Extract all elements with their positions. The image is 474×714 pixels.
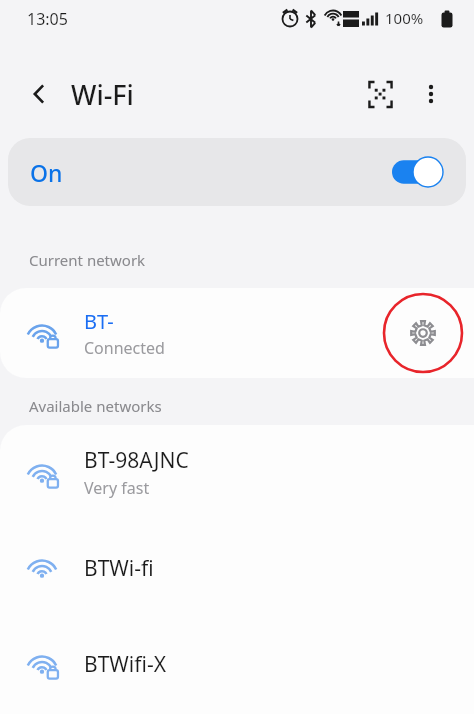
staticText: BTWi-fi <box>84 554 154 583</box>
staticText: BTWifi-X <box>84 650 166 679</box>
staticText: On <box>30 157 63 188</box>
staticText: 100% <box>385 8 424 28</box>
staticText: Current network <box>29 250 146 270</box>
button[interactable]: Back <box>18 72 62 116</box>
staticText: Available networks <box>29 396 162 416</box>
staticText: Connected <box>84 337 165 359</box>
staticText: Very fast <box>84 477 150 499</box>
staticText: BT- <box>84 308 114 335</box>
button[interactable]: On <box>8 138 466 206</box>
staticText: 13:05 <box>27 8 68 30</box>
button[interactable]: More options <box>409 72 453 116</box>
staticText: BT-98AJNC <box>84 446 189 475</box>
button[interactable]: BT-98AJNC <box>0 425 474 520</box>
button[interactable]: BTWifi-X <box>0 616 474 712</box>
button[interactable]: BT- <box>0 288 474 378</box>
staticText: Wi-Fi <box>71 76 134 113</box>
button[interactable]: Scan QR code <box>358 72 402 116</box>
button[interactable]: BTWi-fi <box>0 520 474 616</box>
button[interactable]: Network settings <box>382 292 464 374</box>
